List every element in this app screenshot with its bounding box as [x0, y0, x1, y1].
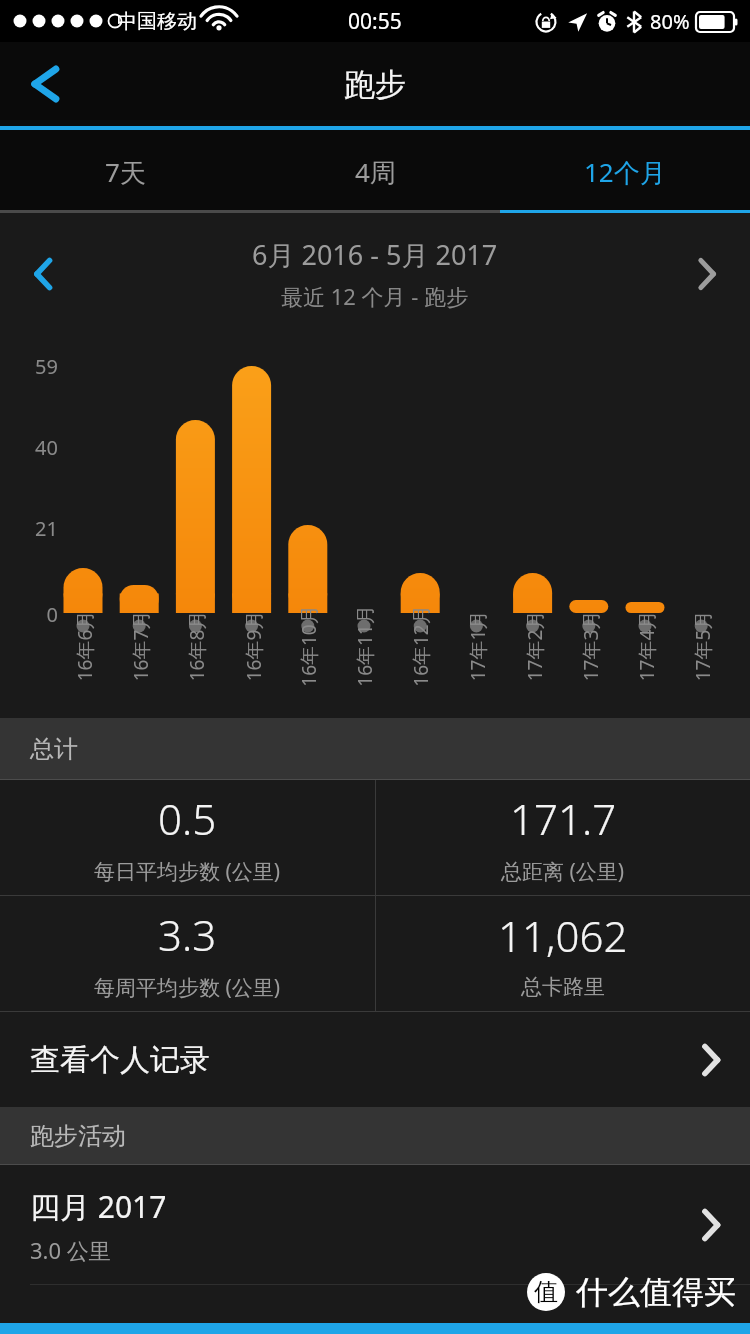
staticText: 59	[12, 353, 58, 380]
staticText: 17年2月	[521, 610, 545, 681]
staticText: 查看个人记录	[30, 1041, 210, 1079]
staticText: 16年10月	[296, 605, 320, 687]
button[interactable]: 四月 2017	[0, 1165, 750, 1285]
staticText: 16年11月	[352, 605, 376, 687]
staticText: 17年5月	[689, 610, 713, 681]
staticText: 12个月	[584, 154, 666, 190]
staticText: 0.5	[158, 790, 217, 847]
staticText: 16年7月	[127, 610, 151, 681]
staticText: 17年1月	[464, 610, 488, 681]
staticText: 总卡路里	[521, 974, 605, 1000]
button[interactable]: 3.3	[0, 896, 375, 1011]
staticText: 总距离 (公里)	[501, 857, 625, 886]
staticText: 四月 2017	[30, 1186, 167, 1227]
staticText: 3.3	[158, 906, 217, 963]
staticText: 跑步活动	[30, 1121, 126, 1151]
staticText: 每周平均步数 (公里)	[94, 973, 281, 1002]
button[interactable]: 171.7	[376, 780, 750, 895]
staticText: 0	[12, 601, 58, 628]
staticText: 00:55	[348, 7, 402, 36]
button[interactable]: Previous	[0, 213, 86, 323]
staticText: 21	[12, 515, 58, 542]
staticText: 什么值得买	[576, 1272, 736, 1312]
staticText: 16年8月	[183, 610, 207, 681]
staticText: 16年6月	[71, 610, 95, 681]
staticText: 4周	[355, 154, 396, 190]
button[interactable]: 7天	[0, 130, 250, 213]
staticText: 17年4月	[633, 610, 657, 681]
staticText: 3.0 公里	[30, 1235, 111, 1265]
staticText: 17年3月	[577, 610, 601, 681]
staticText: 中国移动	[117, 9, 197, 34]
staticText: 7天	[105, 154, 146, 190]
staticText: 值	[534, 1277, 558, 1307]
staticText: 每日平均步数 (公里)	[94, 857, 281, 886]
button[interactable]: 12个月	[500, 130, 750, 213]
button[interactable]: 0.5	[0, 780, 375, 895]
button[interactable]: 11,062	[376, 896, 750, 1011]
button[interactable]: 4周	[250, 130, 500, 213]
staticText: 最近 12 个月 - 跑步	[281, 281, 469, 311]
staticText: 16年12月	[408, 605, 432, 687]
staticText: 16年9月	[240, 610, 264, 681]
staticText: 40	[12, 434, 58, 461]
staticText: 6月 2016 - 5月 2017	[252, 236, 498, 273]
staticText: 总计	[30, 734, 78, 764]
staticText: 171.7	[510, 790, 617, 847]
staticText: 11,062	[498, 907, 628, 964]
button[interactable]: Next	[664, 213, 750, 323]
button[interactable]: Back	[0, 42, 90, 126]
staticText: 80%	[650, 8, 690, 35]
staticText: 跑步	[344, 65, 406, 104]
button[interactable]: 查看个人记录	[0, 1012, 750, 1107]
